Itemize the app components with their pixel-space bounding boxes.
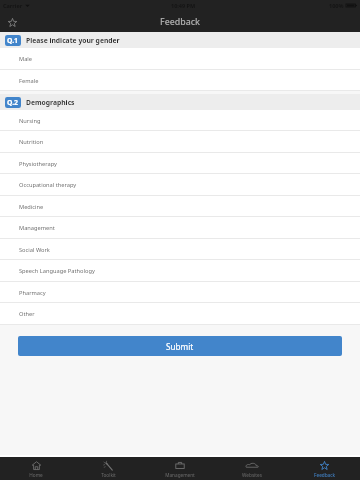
button[interactable]: Management — [144, 457, 216, 480]
staticText: Home — [29, 472, 43, 478]
staticText: Male — [19, 55, 33, 63]
staticText: Pharmacy — [19, 289, 46, 297]
button[interactable]: Management — [0, 217, 360, 239]
button[interactable]: Male — [0, 48, 360, 70]
staticText: Female — [19, 77, 39, 85]
button[interactable]: Physiotherapy — [0, 153, 360, 174]
staticText: Toolkit — [101, 472, 116, 478]
button[interactable]: Medicine — [0, 196, 360, 217]
staticText: Speech Language Pathology — [19, 267, 95, 275]
staticText: Management — [165, 472, 195, 478]
staticText: Social Work — [19, 246, 50, 254]
button[interactable]: Feedback — [288, 457, 360, 480]
staticText: Demographics — [26, 98, 75, 107]
button[interactable]: Home — [0, 457, 72, 480]
button[interactable]: Female — [0, 70, 360, 91]
button[interactable]: Pharmacy — [0, 282, 360, 303]
button[interactable]: Social Work — [0, 239, 360, 260]
button[interactable]: Toolkit — [72, 457, 144, 480]
staticText: Feedback — [160, 16, 200, 28]
staticText: Q.1 — [7, 36, 19, 45]
staticText: Nursing — [19, 117, 41, 125]
staticText: Carrier — [3, 2, 23, 9]
staticText: Websites — [242, 472, 262, 478]
button[interactable]: Nutrition — [0, 131, 360, 153]
button[interactable]: Other — [0, 303, 360, 325]
staticText: Submit — [166, 341, 194, 352]
staticText: 10:49 PM — [171, 2, 196, 9]
button[interactable]: Websites — [216, 457, 288, 480]
button[interactable]: Favourite — [4, 14, 20, 30]
button[interactable]: Speech Language Pathology — [0, 260, 360, 282]
staticText: Other — [19, 310, 35, 318]
staticText: 100% — [329, 2, 344, 9]
button[interactable]: Nursing — [0, 110, 360, 131]
staticText: Physiotherapy — [19, 160, 57, 168]
staticText: Nutrition — [19, 138, 44, 146]
staticText: Occupational therapy — [19, 181, 77, 189]
staticText: Medicine — [19, 203, 44, 211]
staticText: Feedback — [314, 472, 335, 478]
staticText: Please indicate your gender — [26, 36, 120, 45]
staticText: Management — [19, 224, 55, 232]
button[interactable]: Occupational therapy — [0, 174, 360, 196]
button[interactable]: Submit — [18, 336, 342, 356]
staticText: Q.2 — [7, 98, 19, 107]
